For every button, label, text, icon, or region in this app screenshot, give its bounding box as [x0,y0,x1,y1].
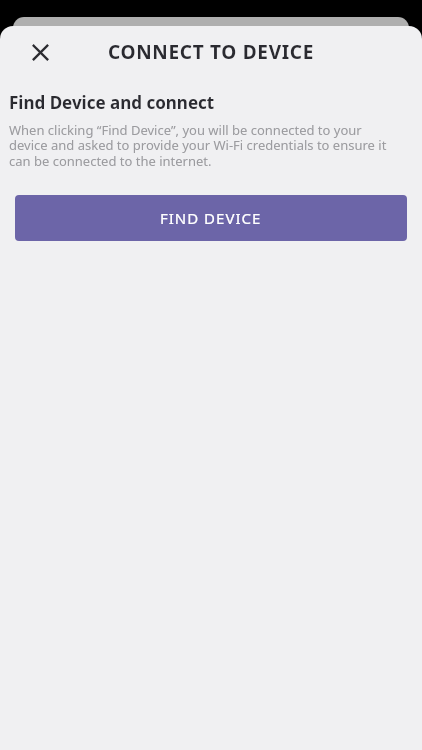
button[interactable]: Close [22,34,58,70]
button[interactable]: FIND DEVICE [15,195,407,241]
staticText: CONNECT TO DEVICE [0,39,422,65]
staticText: FIND DEVICE [160,208,262,228]
staticText: Find Device and connect [9,91,215,114]
staticText: When clicking “Find Device”, you will be… [9,121,400,170]
